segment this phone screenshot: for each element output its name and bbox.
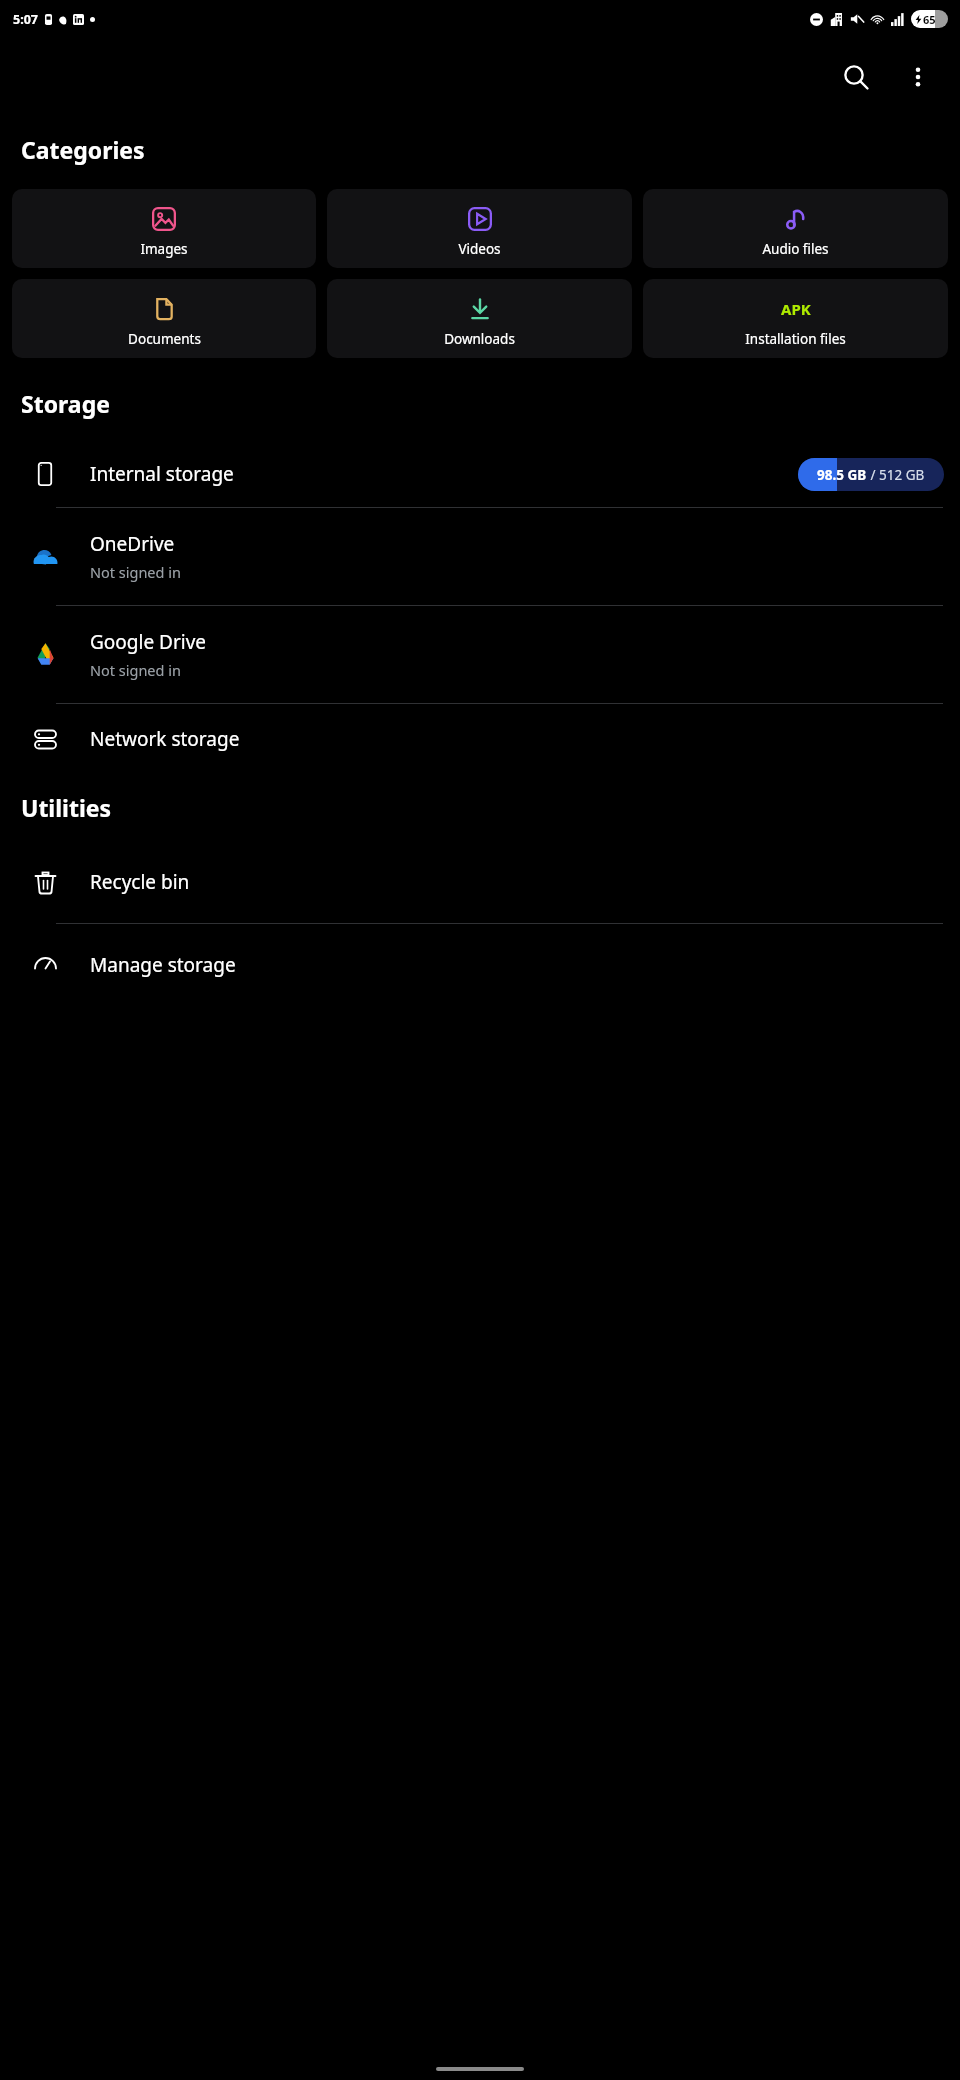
button[interactable]: Google Drive — [0, 606, 960, 703]
button[interactable]: 98.5 GB — [798, 458, 944, 491]
staticText: 98.5 GB — [817, 466, 867, 484]
staticText: Videos — [458, 240, 501, 258]
staticText: Audio files — [762, 240, 829, 258]
staticText: Storage — [21, 388, 110, 419]
button[interactable]: Internal storage — [0, 441, 960, 507]
staticText: 65 — [923, 12, 936, 27]
staticText: Documents — [128, 330, 201, 348]
button[interactable]: OneDrive — [0, 508, 960, 605]
staticText: / 512 GB — [867, 466, 925, 484]
button[interactable]: APK — [643, 279, 948, 358]
button[interactable]: Audio files — [643, 189, 948, 268]
button[interactable]: Network storage — [0, 704, 960, 774]
staticText: Google Drive — [90, 629, 207, 655]
staticText: 5:07 — [13, 11, 38, 28]
staticText: Internal storage — [90, 461, 234, 487]
staticText: Installation files — [745, 330, 846, 348]
button[interactable]: Documents — [12, 279, 316, 358]
button[interactable]: Images — [12, 189, 316, 268]
button[interactable]: Search — [830, 51, 882, 103]
staticText: Recycle bin — [90, 869, 190, 895]
staticText: Images — [140, 240, 188, 258]
staticText: APK — [781, 299, 811, 319]
staticText: Not signed in — [90, 562, 181, 582]
staticText: Not signed in — [90, 660, 181, 680]
staticText: Manage storage — [90, 952, 236, 978]
staticText: OneDrive — [90, 531, 175, 557]
staticText: Network storage — [90, 726, 240, 752]
button[interactable]: Downloads — [327, 279, 632, 358]
button[interactable]: Manage storage — [0, 924, 960, 1006]
button[interactable]: More options — [892, 51, 944, 103]
staticText: Downloads — [444, 330, 515, 348]
staticText: Utilities — [21, 792, 112, 823]
button[interactable]: Videos — [327, 189, 632, 268]
button[interactable]: Recycle bin — [0, 841, 960, 923]
staticText: Categories — [21, 134, 145, 165]
